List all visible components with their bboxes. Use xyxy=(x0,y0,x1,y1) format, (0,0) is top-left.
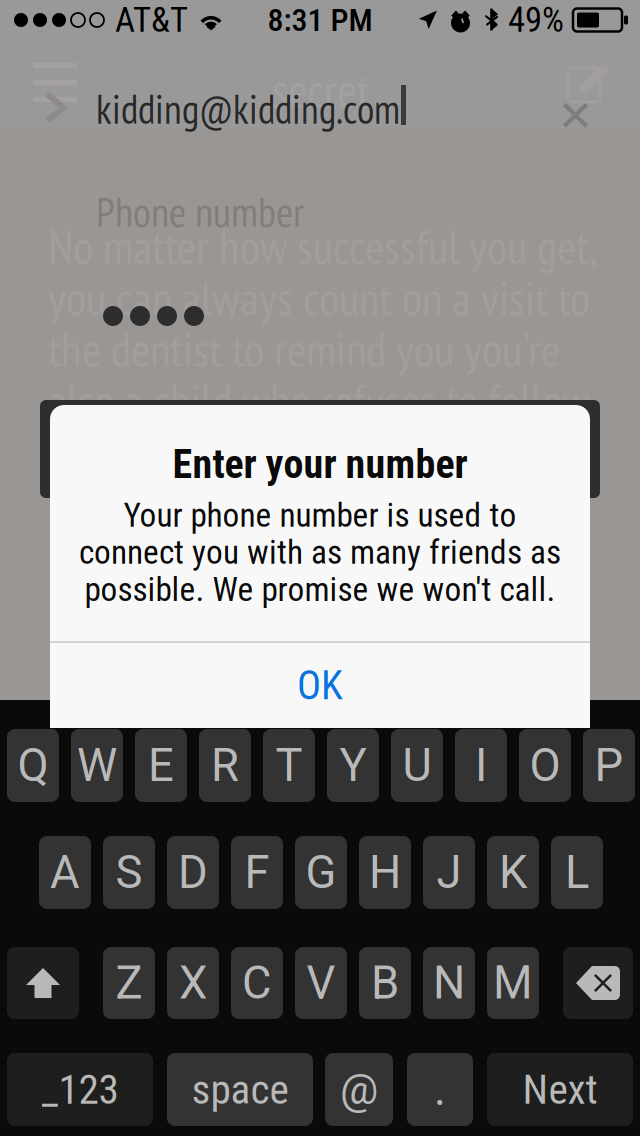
button[interactable]: space xyxy=(167,1053,313,1126)
staticText: M xyxy=(493,956,533,1009)
staticText: Phone number xyxy=(96,185,304,238)
staticText: T xyxy=(275,739,302,792)
staticText: you can always count on a visit to xyxy=(48,267,590,328)
button[interactable]: _123 xyxy=(7,1053,153,1126)
staticText: H xyxy=(369,846,401,899)
button[interactable]: Q xyxy=(7,729,59,802)
staticText: No matter how successful you get, xyxy=(48,216,598,276)
button[interactable]: O xyxy=(519,729,571,802)
button[interactable]: S xyxy=(103,836,155,909)
staticText: 8:31 PM xyxy=(267,1,372,39)
button[interactable]: P xyxy=(583,729,635,802)
staticText: 49% xyxy=(508,0,564,40)
button[interactable]: Menu xyxy=(21,51,89,114)
staticText: N xyxy=(433,956,465,1009)
button[interactable]: Z xyxy=(103,947,155,1019)
staticText: U xyxy=(402,739,431,792)
button[interactable]: J xyxy=(423,836,475,909)
button[interactable]: D xyxy=(167,836,219,909)
button[interactable]: B xyxy=(359,947,411,1019)
staticText: the dentist to remind you you're xyxy=(48,319,560,379)
button[interactable]: F xyxy=(231,836,283,909)
button[interactable]: A xyxy=(39,836,91,909)
staticText: I xyxy=(475,739,487,792)
staticText: R xyxy=(211,739,239,792)
staticText: P xyxy=(594,739,623,792)
staticText: J xyxy=(436,846,461,899)
staticText: C xyxy=(242,956,272,1009)
button[interactable]: H xyxy=(359,836,411,909)
button[interactable]: L xyxy=(551,836,603,909)
staticText: S xyxy=(115,846,142,899)
staticText: kidding@kidding.com xyxy=(96,83,400,135)
button[interactable]: Next xyxy=(487,1053,633,1126)
button[interactable]: X xyxy=(167,947,219,1019)
button[interactable]: W xyxy=(71,729,123,802)
button[interactable]: @ xyxy=(325,1053,393,1126)
button[interactable]: C xyxy=(231,947,283,1019)
staticText: Z xyxy=(115,956,142,1009)
staticText: OK xyxy=(297,662,343,709)
staticText: connect you with as many friends as xyxy=(79,533,561,572)
button[interactable]: Clear text xyxy=(551,91,600,140)
staticText: Enter your number xyxy=(172,441,467,488)
button[interactable]: Shift xyxy=(7,947,79,1019)
staticText: O xyxy=(529,739,560,792)
button[interactable]: Y xyxy=(327,729,379,802)
button[interactable]: Compose xyxy=(553,50,615,110)
staticText: _123 xyxy=(41,1065,118,1114)
button[interactable]: U xyxy=(391,729,443,802)
button[interactable]: R xyxy=(199,729,251,802)
button[interactable]: T xyxy=(263,729,315,802)
button[interactable]: N xyxy=(423,947,475,1019)
button[interactable]: OK xyxy=(50,643,590,728)
staticText: G xyxy=(305,846,336,899)
button[interactable]: V xyxy=(295,947,347,1019)
button[interactable]: Delete xyxy=(563,947,633,1019)
button[interactable]: E xyxy=(135,729,187,802)
staticText: . xyxy=(434,1063,446,1116)
button[interactable]: I xyxy=(455,729,507,802)
staticText: X xyxy=(179,956,207,1009)
staticText: L xyxy=(565,846,589,899)
staticText: A xyxy=(50,846,80,899)
staticText: Y xyxy=(339,739,366,792)
staticText: F xyxy=(244,846,269,899)
button[interactable]: G xyxy=(295,836,347,909)
staticText: possible. We promise we won't call. xyxy=(84,570,555,609)
staticText: AT&T xyxy=(115,0,188,40)
staticText: K xyxy=(499,846,527,899)
staticText: D xyxy=(178,846,208,899)
staticText: Q xyxy=(17,739,48,792)
staticText: W xyxy=(77,739,117,792)
staticText: Next xyxy=(522,1065,597,1114)
staticText: secret xyxy=(272,59,370,121)
button[interactable]: M xyxy=(487,947,539,1019)
staticText: V xyxy=(306,956,335,1009)
button[interactable]: K xyxy=(487,836,539,909)
staticText: B xyxy=(371,956,399,1009)
staticText: Your phone number is used to xyxy=(123,496,516,535)
staticText: also a child who refuses to follow xyxy=(48,370,590,431)
staticText: E xyxy=(148,739,174,792)
staticText: @ xyxy=(340,1064,378,1114)
button[interactable]: . xyxy=(407,1053,473,1126)
staticText: space xyxy=(191,1065,288,1114)
